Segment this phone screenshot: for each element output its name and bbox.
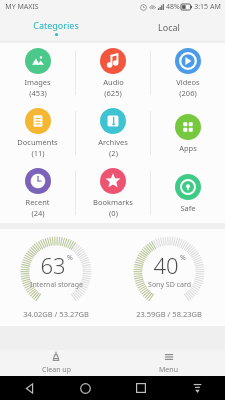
button[interactable]: Documents [0, 103, 75, 163]
staticText: Categories [33, 19, 79, 31]
staticText: 34.02GB / 53.27GB [23, 309, 89, 319]
staticText: Audio [103, 77, 124, 87]
staticText: 3:15 AM [194, 2, 221, 12]
button[interactable]: Recents [132, 379, 150, 397]
staticText: 40 [153, 250, 179, 280]
staticText: Internal storage [30, 280, 83, 290]
button[interactable]: Home [76, 379, 94, 397]
staticText: (625) [104, 88, 122, 98]
button[interactable]: Recent [0, 163, 75, 223]
button[interactable]: Safe [151, 163, 225, 223]
staticText: Local [158, 21, 180, 33]
staticText: Documents [17, 137, 58, 147]
staticText: Bookmarks [93, 197, 133, 207]
button[interactable]: Archives [76, 103, 150, 163]
staticText: Videos [176, 77, 200, 87]
button[interactable]: 40 [112, 236, 225, 319]
button[interactable]: Audio [76, 43, 150, 103]
staticText: (206) [179, 88, 197, 98]
button[interactable]: Images [0, 43, 75, 103]
staticText: Sony SD card [148, 280, 191, 290]
staticText: 23.59GB / 58.23GB [136, 309, 202, 319]
staticText: Recent [25, 197, 50, 207]
button[interactable]: Videos [151, 43, 225, 103]
staticText: Apps [179, 143, 197, 153]
staticText: (2) [109, 148, 118, 158]
button[interactable]: Categories [0, 14, 112, 40]
staticText: (24) [31, 208, 45, 218]
button[interactable]: Back [20, 379, 38, 397]
button[interactable]: Local [112, 14, 225, 40]
staticText: % [67, 253, 73, 263]
staticText: (11) [31, 148, 45, 158]
staticText: Safe [180, 203, 196, 213]
button[interactable]: Hide navigation bar [188, 379, 206, 397]
staticText: 63 [40, 250, 66, 280]
staticText: % [180, 253, 186, 263]
staticText: MY MAXIS [5, 2, 39, 12]
staticText: 48% [166, 2, 180, 12]
staticText: Menu [159, 365, 178, 375]
button[interactable]: Apps [151, 103, 225, 163]
staticText: Archives [98, 137, 128, 147]
button[interactable]: Menu [112, 350, 225, 376]
button[interactable]: Clean up [0, 350, 112, 376]
staticText: Clean up [42, 365, 71, 375]
staticText: Images [24, 77, 51, 87]
button[interactable]: 63 [0, 236, 112, 319]
button[interactable]: Bookmarks [76, 163, 150, 223]
staticText: (453) [29, 88, 47, 98]
staticText: (0) [109, 208, 118, 218]
